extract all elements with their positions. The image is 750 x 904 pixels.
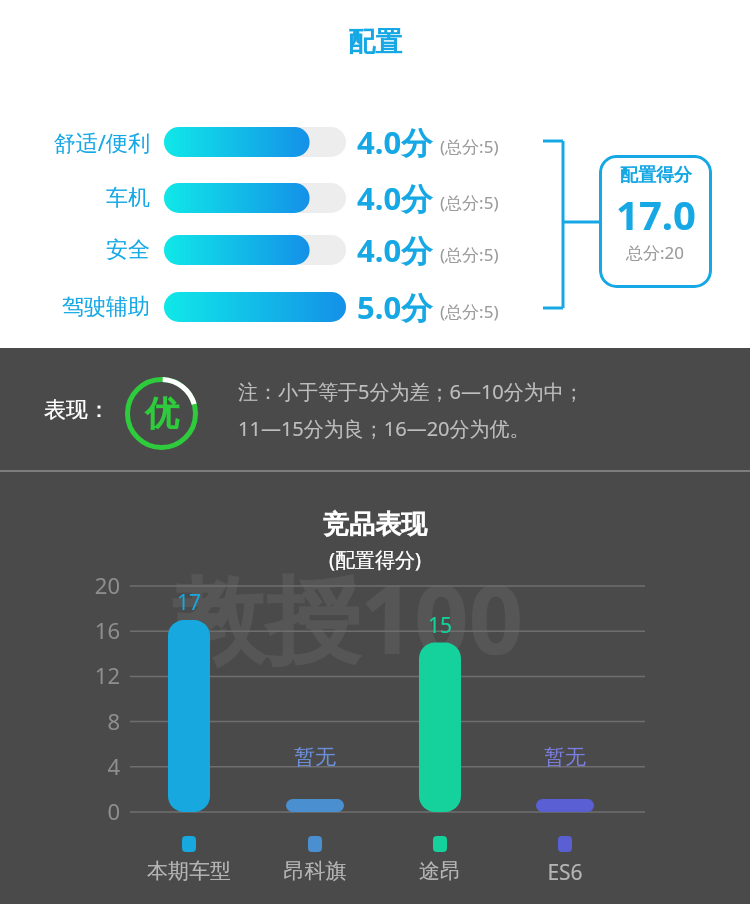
staticText: 注：小于等于5分为差；6—10分为中； [238, 378, 584, 405]
staticText: 4.0分 [357, 229, 433, 271]
button[interactable]: 配置得分 [599, 155, 712, 288]
staticText: 4.0分 [357, 177, 433, 219]
staticText: (总分:5) [440, 191, 499, 214]
button[interactable]: 本期车型 [119, 858, 259, 884]
staticText: 4.0分 [357, 121, 433, 163]
staticText: 配置得分 [620, 164, 692, 187]
staticText: 暂无 [505, 744, 625, 770]
button[interactable]: 舒适/便利 [0, 120, 750, 164]
staticText: 20 [70, 570, 120, 600]
staticText: 车机 [0, 184, 150, 212]
staticText: 8 [70, 706, 120, 736]
staticText: 暂无 [255, 744, 375, 770]
staticText: 教授100 [170, 552, 524, 682]
staticText: ES6 [495, 858, 635, 887]
staticText: (总分:5) [440, 135, 499, 158]
staticText: 昂科旗 [245, 858, 385, 884]
staticText: 优 [145, 392, 179, 435]
staticText: (配置得分) [329, 546, 421, 573]
staticText: 竞品表现 [323, 508, 427, 541]
staticText: 17.0 [616, 187, 696, 241]
staticText: 表现： [44, 396, 110, 424]
staticText: 总分:20 [626, 241, 685, 264]
staticText: 安全 [0, 236, 150, 264]
staticText: (总分:5) [440, 243, 499, 266]
staticText: (总分:5) [440, 300, 499, 323]
staticText: 0 [70, 796, 120, 826]
staticText: 17 [129, 588, 249, 617]
staticText: 16 [70, 615, 120, 645]
staticText: 5.0分 [357, 286, 433, 328]
staticText: 15 [380, 611, 500, 640]
staticText: 舒适/便利 [0, 127, 150, 157]
staticText: 配置 [0, 25, 750, 59]
staticText: 11—15分为良；16—20分为优。 [238, 415, 530, 442]
button[interactable]: ES6 [495, 858, 635, 887]
button[interactable]: 安全 [0, 228, 750, 272]
staticText: 12 [70, 660, 120, 690]
staticText: 驾驶辅助 [0, 293, 150, 321]
button[interactable]: 昂科旗 [245, 858, 385, 884]
staticText: 4 [70, 751, 120, 781]
button[interactable]: 车机 [0, 176, 750, 220]
staticText: 本期车型 [119, 858, 259, 884]
button[interactable]: 驾驶辅助 [0, 285, 750, 329]
button[interactable]: 途昂 [370, 858, 510, 884]
staticText: 途昂 [370, 858, 510, 884]
button[interactable]: 优 rating [125, 377, 198, 450]
